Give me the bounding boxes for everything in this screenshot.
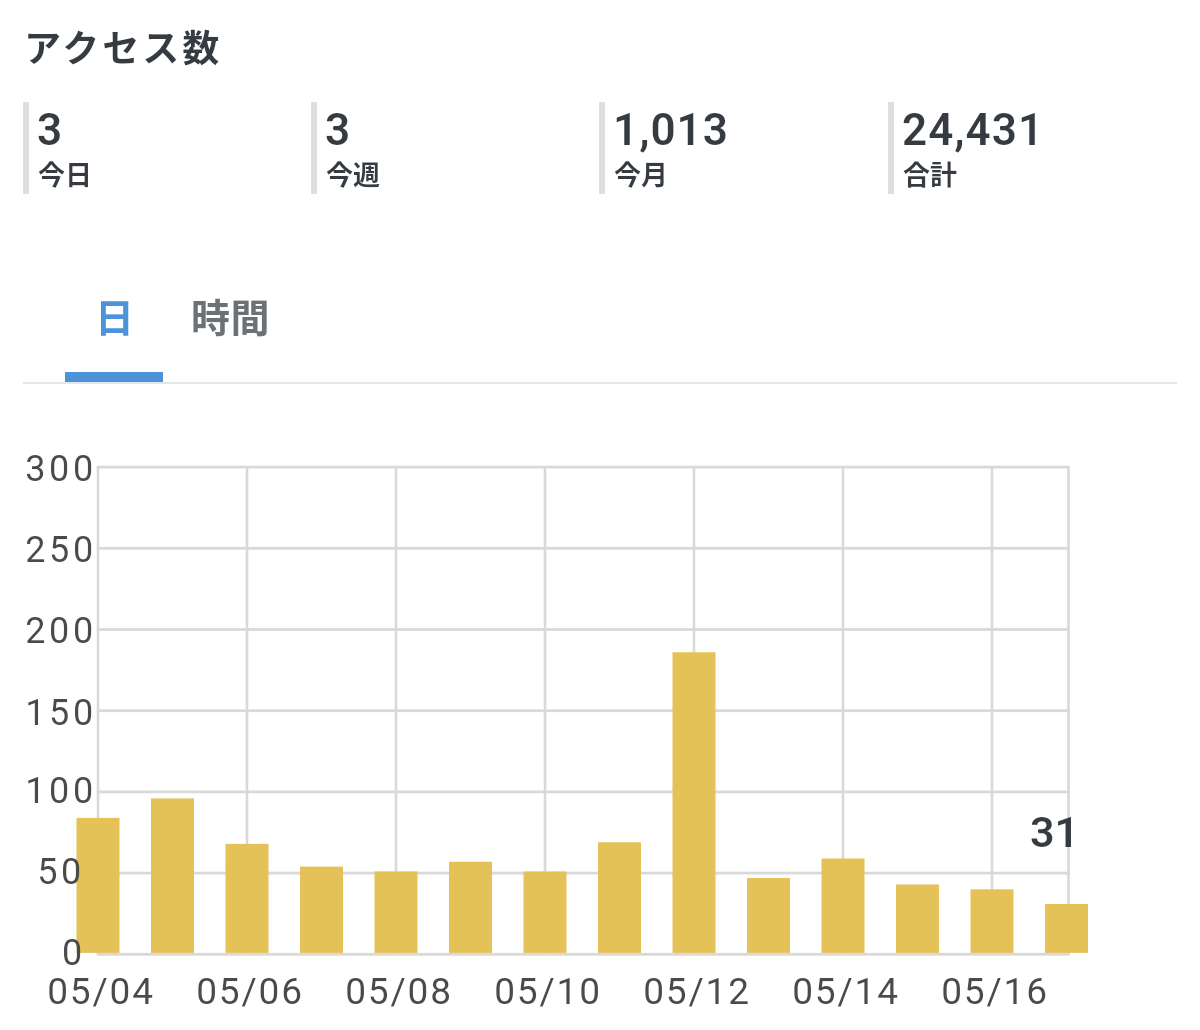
staticText: 3: [37, 104, 64, 156]
staticText: 0: [0, 932, 154, 974]
staticText: 150: [0, 692, 141, 734]
button[interactable]: 時間: [161, 256, 301, 382]
staticText: 05/10: [478, 970, 618, 1013]
staticText: 200: [0, 610, 141, 652]
staticText: 今月: [614, 154, 668, 193]
staticText: 日: [95, 287, 135, 343]
staticText: 1,013: [613, 104, 729, 156]
staticText: 3: [325, 104, 352, 156]
staticText: 05/06: [180, 970, 320, 1013]
staticText: 24,431: [902, 104, 1045, 156]
staticText: アクセス数: [24, 19, 223, 73]
staticText: 100: [0, 770, 141, 812]
staticText: 50: [0, 851, 141, 893]
staticText: 05/14: [776, 970, 916, 1013]
staticText: 05/08: [329, 970, 469, 1013]
staticText: 今日: [38, 154, 92, 193]
staticText: 05/12: [627, 970, 767, 1013]
staticText: 合計: [903, 154, 957, 193]
staticText: 05/04: [31, 970, 171, 1013]
staticText: 05/16: [925, 970, 1065, 1013]
staticText: 300: [0, 448, 141, 490]
staticText: 250: [0, 529, 141, 571]
button[interactable]: 日: [65, 256, 165, 382]
staticText: 時間: [191, 287, 271, 343]
staticText: 今週: [326, 154, 380, 193]
staticText: 31: [1030, 807, 1080, 857]
